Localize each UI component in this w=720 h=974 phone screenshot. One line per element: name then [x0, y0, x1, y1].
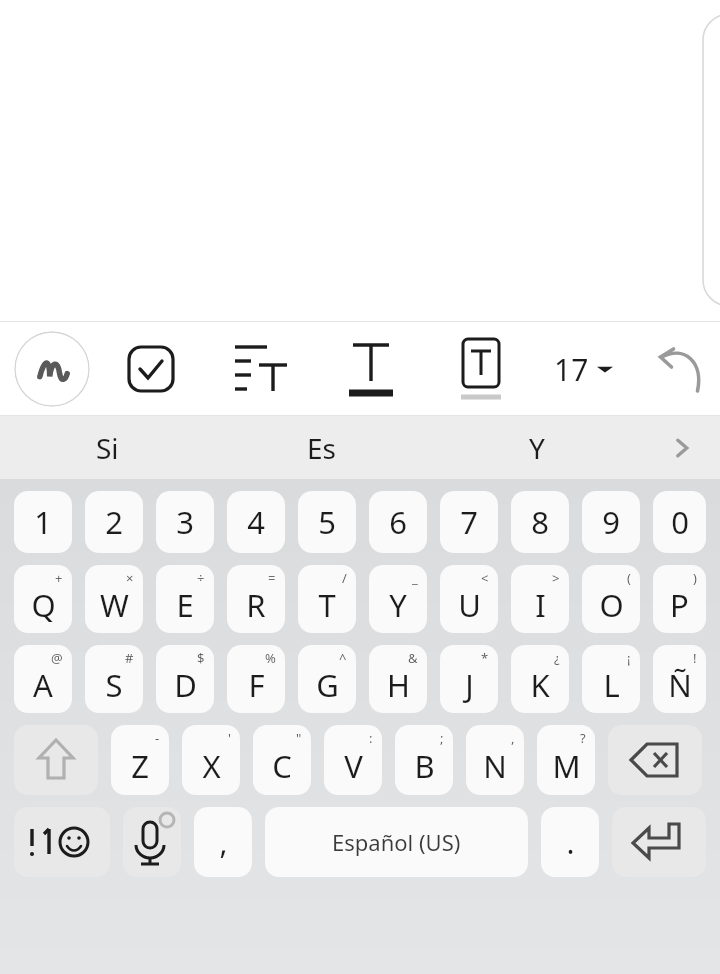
staticText: " — [296, 729, 302, 747]
button[interactable]: Backspace — [608, 725, 702, 795]
button[interactable]: 17 — [548, 334, 619, 404]
button[interactable]: 4 — [227, 491, 285, 553]
button[interactable]: . — [541, 807, 599, 877]
staticText: × — [126, 569, 134, 587]
button[interactable]: ) — [653, 565, 706, 633]
staticText: ^ — [339, 649, 347, 667]
staticText: P — [670, 584, 689, 626]
button[interactable]: Voice input — [123, 807, 181, 877]
staticText: 3 — [176, 501, 194, 543]
button[interactable]: & — [369, 645, 427, 713]
button[interactable]: 2 — [85, 491, 143, 553]
staticText: O — [599, 584, 624, 626]
button[interactable]: @ — [14, 645, 72, 713]
button[interactable]: Undo — [649, 334, 714, 404]
staticText: + — [55, 569, 63, 587]
button[interactable]: < — [440, 565, 498, 633]
staticText: ( — [627, 569, 631, 587]
button[interactable]: ' — [182, 725, 240, 795]
staticText: % — [265, 649, 276, 667]
staticText: G — [316, 664, 339, 706]
staticText: ! — [693, 649, 697, 667]
button[interactable]: 0 — [653, 491, 706, 553]
staticText: U — [458, 584, 481, 626]
staticText: 1 — [34, 501, 52, 543]
button[interactable]: > — [511, 565, 569, 633]
button[interactable]: $ — [156, 645, 214, 713]
staticText: 8 — [531, 501, 549, 543]
staticText: = — [268, 569, 276, 587]
button[interactable]: Checklist — [116, 334, 186, 404]
button[interactable]: Symbols and emoji — [14, 807, 110, 877]
button[interactable]: Si — [0, 416, 214, 479]
button[interactable]: / — [298, 565, 356, 633]
button[interactable]: # — [85, 645, 143, 713]
button[interactable]: 7 — [440, 491, 498, 553]
button[interactable]: 8 — [511, 491, 569, 553]
button[interactable]: Text style — [336, 334, 406, 404]
staticText: Z — [131, 745, 149, 787]
staticText: Es — [307, 429, 336, 467]
button[interactable]: ¡ — [582, 645, 640, 713]
button[interactable]: Español (US) — [265, 807, 528, 877]
button[interactable]: Es — [214, 416, 429, 479]
staticText: Español (US) — [332, 827, 461, 857]
staticText: ÷ — [197, 569, 205, 587]
button[interactable]: " — [253, 725, 311, 795]
button[interactable]: , — [466, 725, 524, 795]
staticText: E — [176, 584, 194, 626]
staticText: H — [387, 664, 410, 706]
staticText: B — [414, 745, 435, 787]
button[interactable]: 1 — [14, 491, 72, 553]
staticText: ' — [228, 729, 231, 747]
staticText: ? — [580, 729, 586, 747]
button[interactable]: Y — [429, 416, 644, 479]
button[interactable]: Shift — [14, 725, 98, 795]
button[interactable]: , — [194, 807, 252, 877]
button[interactable]: - — [111, 725, 169, 795]
button[interactable]: 6 — [369, 491, 427, 553]
button[interactable]: Enter — [612, 807, 706, 877]
button[interactable]: 3 — [156, 491, 214, 553]
button[interactable]: ! — [653, 645, 706, 713]
button[interactable]: _ — [369, 565, 427, 633]
button[interactable]: Paragraph style — [226, 334, 296, 404]
button[interactable]: 9 — [582, 491, 640, 553]
button[interactable]: = — [227, 565, 285, 633]
button[interactable]: Highlight — [446, 334, 516, 404]
staticText: - — [155, 729, 160, 747]
button[interactable]: + — [14, 565, 72, 633]
button[interactable]: × — [85, 565, 143, 633]
staticText: F — [248, 664, 265, 706]
staticText: / — [342, 569, 347, 587]
staticText: 9 — [602, 501, 620, 543]
button[interactable]: 5 — [298, 491, 356, 553]
staticText: W — [100, 584, 129, 626]
button[interactable]: ¿ — [511, 645, 569, 713]
staticText: ¡ — [627, 649, 631, 667]
button[interactable]: ? — [537, 725, 595, 795]
staticText: C — [272, 745, 292, 787]
button[interactable]: * — [440, 645, 498, 713]
staticText: Y — [529, 429, 545, 467]
staticText: S — [105, 664, 123, 706]
staticText: 4 — [247, 501, 265, 543]
staticText: 6 — [389, 501, 407, 543]
button[interactable]: ^ — [298, 645, 356, 713]
staticText: Y — [389, 584, 407, 626]
button[interactable]: % — [227, 645, 285, 713]
button[interactable]: : — [324, 725, 382, 795]
staticText: R — [246, 584, 266, 626]
staticText: @ — [51, 649, 63, 667]
button[interactable]: Handwriting — [14, 331, 90, 407]
button[interactable]: ( — [582, 565, 640, 633]
button[interactable]: More suggestions — [644, 416, 720, 479]
staticText: 5 — [318, 501, 336, 543]
staticText: 0 — [671, 501, 689, 543]
staticText: M — [552, 745, 581, 787]
staticText: . — [566, 822, 575, 863]
staticText: N — [483, 745, 507, 787]
staticText: : — [369, 729, 373, 747]
button[interactable]: ÷ — [156, 565, 214, 633]
button[interactable]: ; — [395, 725, 453, 795]
